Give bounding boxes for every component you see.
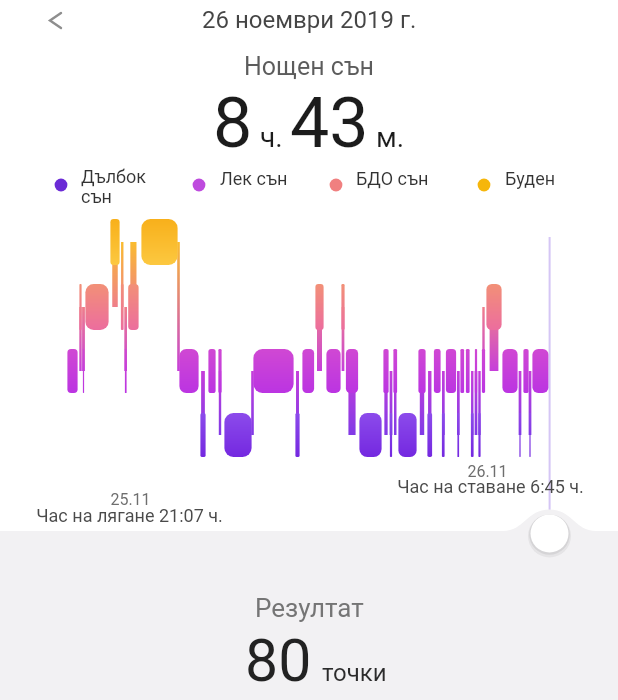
staticText: 25.11: [110, 490, 151, 509]
staticText: 80: [245, 626, 312, 695]
staticText: Нощен сън: [244, 52, 374, 81]
staticText: Час на ставане 6:45 ч.: [397, 476, 584, 497]
staticText: 26.11: [467, 462, 508, 481]
button[interactable]: [40, 4, 74, 38]
staticText: 8: [213, 82, 253, 164]
staticText: Резултат: [255, 593, 364, 623]
staticText: точки: [322, 659, 387, 687]
staticText: 26 ноември 2019 г.: [202, 6, 417, 34]
staticText: 43: [290, 82, 369, 164]
staticText: Лек сън: [220, 168, 288, 189]
staticText: м.: [369, 121, 405, 154]
staticText: ч.: [253, 121, 290, 154]
staticText: Час на лягане 21:07 ч.: [36, 505, 223, 526]
staticText: БДО сън: [356, 168, 429, 189]
staticText: Буден: [505, 168, 556, 189]
staticText: Дълбок сън: [81, 166, 147, 208]
